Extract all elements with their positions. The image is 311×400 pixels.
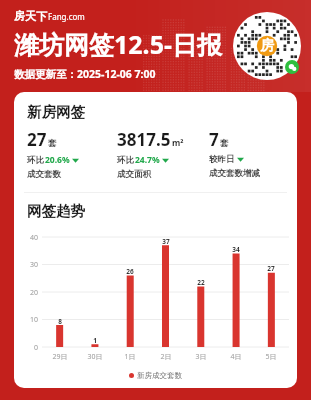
staticText: 27 (27, 128, 47, 151)
staticText: 1 (83, 336, 107, 345)
staticText: 29日 (46, 352, 74, 362)
staticText: 环比 (117, 155, 134, 166)
staticText: 5日 (257, 352, 285, 362)
staticText: 套 (220, 138, 229, 149)
staticText: 26 (118, 267, 142, 276)
staticText: 房天下 (14, 9, 47, 23)
staticText: 22 (189, 278, 213, 287)
staticText: 10 (18, 315, 38, 325)
staticText: 环比 (27, 155, 44, 166)
staticText: 成交套数 (27, 169, 61, 180)
staticText: 1日 (116, 352, 144, 362)
staticText: 20.6% (45, 154, 70, 166)
staticText: 27 (259, 264, 283, 273)
staticText: 成交面积 (117, 169, 151, 180)
staticText: 37 (154, 237, 178, 246)
staticText: 34 (224, 245, 248, 254)
staticText: 成交套数增减 (209, 168, 260, 179)
button[interactable]: 7 (209, 128, 291, 179)
staticText: 新房成交套数 (137, 371, 182, 380)
staticText: 3日 (187, 352, 215, 362)
staticText: 20 (18, 288, 38, 298)
staticText: m² (172, 137, 184, 149)
staticText: 套 (48, 138, 57, 149)
staticText: 房 (260, 37, 274, 55)
button[interactable]: 27 (27, 128, 117, 180)
staticText: 2日 (152, 352, 180, 362)
staticText: 较昨日 (209, 154, 235, 165)
staticText: 潍坊网签12.5-日报 (14, 27, 222, 61)
staticText: 8 (48, 317, 72, 326)
staticText: 网签趋势 (27, 202, 85, 220)
staticText: 4日 (222, 352, 250, 362)
staticText: 3817.5 (117, 128, 171, 151)
staticText: 7 (209, 128, 219, 151)
staticText: 30日 (81, 352, 109, 362)
staticText: 24.7% (135, 154, 160, 166)
button[interactable]: 3817.5 (117, 128, 209, 180)
staticText: Fang.com (48, 11, 85, 22)
staticText: 30 (18, 260, 38, 270)
staticText: 数据更新至：2025-12-06 7:00 (14, 67, 156, 81)
staticText: 新房网签 (27, 103, 85, 121)
button[interactable]: 扫码关注公众号 (233, 12, 301, 80)
staticText: 0 (18, 343, 38, 353)
staticText: 40 (18, 233, 38, 243)
